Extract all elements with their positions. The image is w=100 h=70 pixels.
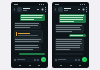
button[interactable]: Video call xyxy=(37,8,40,11)
button[interactable] xyxy=(54,57,81,62)
button[interactable] xyxy=(19,53,45,55)
button[interactable]: Back xyxy=(54,8,57,11)
button[interactable]: Send voice message xyxy=(82,57,87,62)
button[interactable] xyxy=(14,30,43,43)
button[interactable] xyxy=(14,44,41,51)
button[interactable] xyxy=(13,57,40,62)
button[interactable] xyxy=(59,14,86,23)
button[interactable]: Contact avatar xyxy=(58,7,63,12)
button[interactable]: Video call xyxy=(78,8,81,11)
button[interactable] xyxy=(20,14,45,21)
button[interactable]: Send voice message xyxy=(41,57,46,62)
button[interactable] xyxy=(14,22,41,29)
button[interactable]: Voice call xyxy=(41,8,44,11)
button[interactable]: Back xyxy=(13,8,16,11)
button[interactable] xyxy=(55,24,84,33)
button[interactable] xyxy=(55,38,84,51)
button[interactable] xyxy=(69,34,86,37)
button[interactable]: Contact avatar xyxy=(17,7,22,12)
button[interactable]: Voice call xyxy=(82,8,85,11)
button[interactable]: More options xyxy=(86,7,87,12)
button[interactable]: More options xyxy=(45,7,46,12)
